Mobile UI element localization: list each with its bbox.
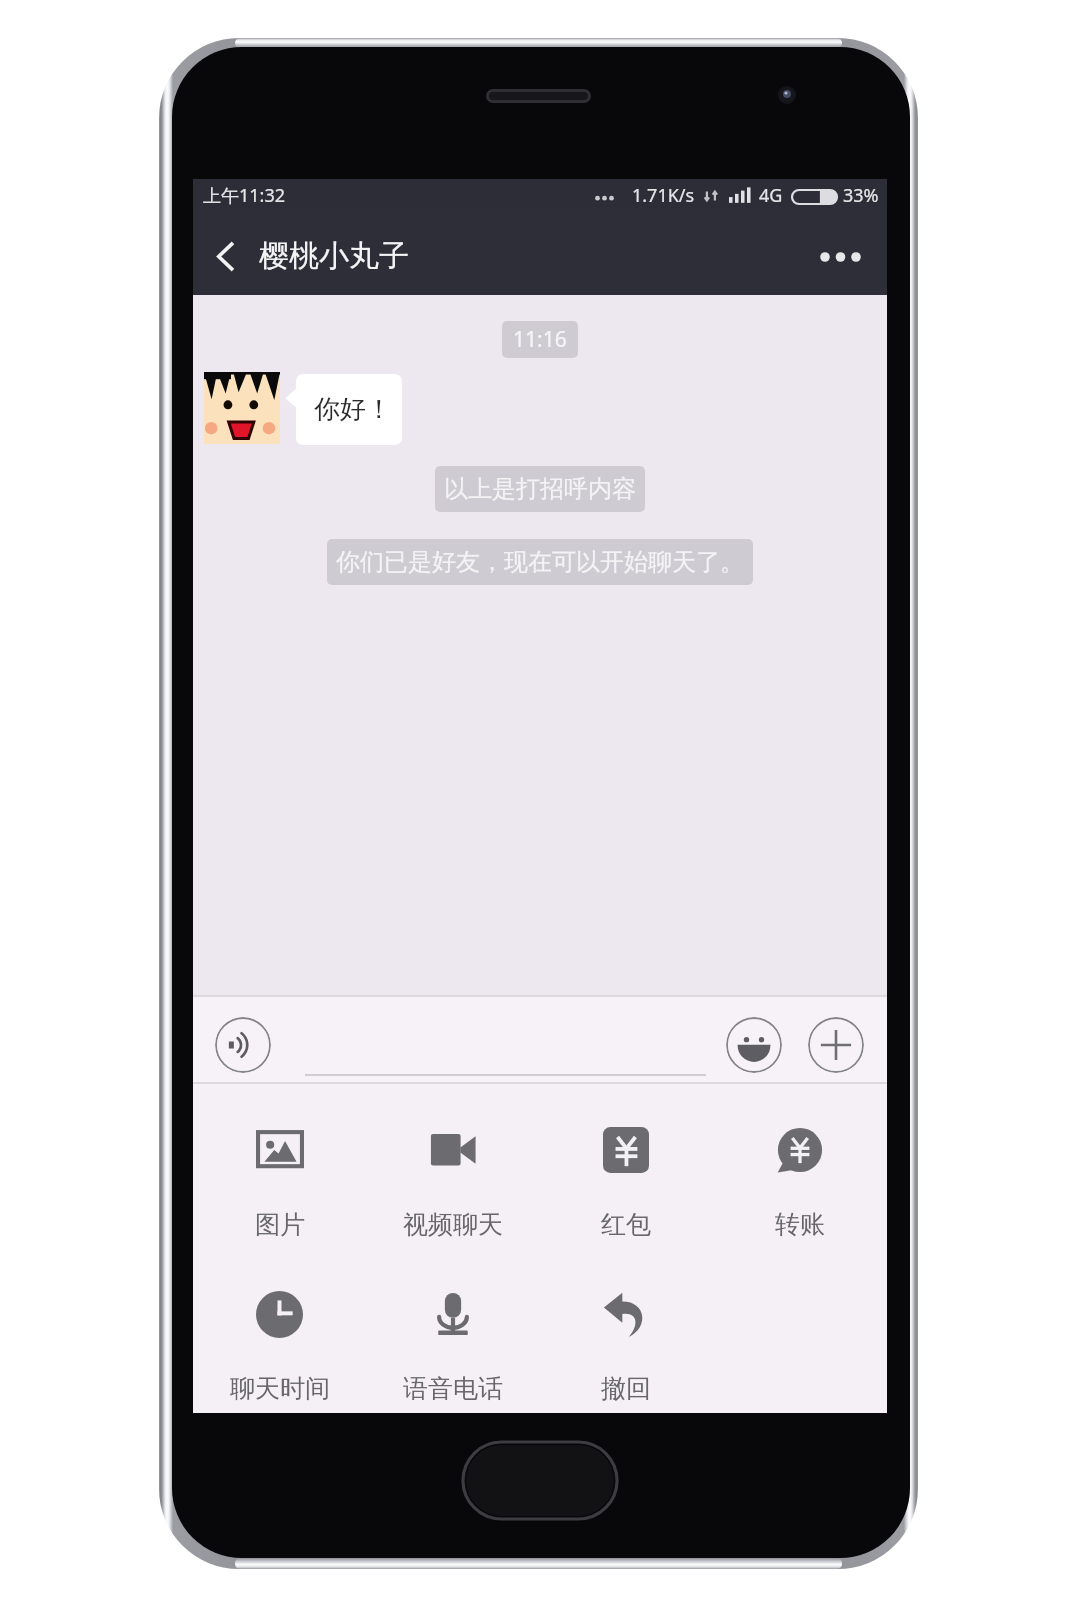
staticText: 红包 — [601, 1209, 651, 1240]
button[interactable]: 转账 — [713, 1084, 887, 1248]
staticText: 你们已是好友，现在可以开始聊天了。 — [336, 547, 744, 577]
button[interactable]: Voice message — [215, 1017, 271, 1073]
button[interactable]: 视频聊天 — [366, 1084, 539, 1248]
staticText: 1.71K/s — [632, 183, 695, 208]
staticText: 语音电话 — [403, 1373, 503, 1404]
button[interactable]: 撤回 — [539, 1248, 713, 1412]
staticText: 转账 — [775, 1209, 825, 1240]
button[interactable]: More — [808, 1017, 864, 1073]
button[interactable]: Emoji — [726, 1017, 782, 1073]
staticText: 上午11:32 — [203, 183, 286, 208]
button[interactable]: 图片 — [193, 1084, 366, 1248]
staticText: 撤回 — [601, 1373, 651, 1404]
staticText: 图片 — [255, 1209, 305, 1240]
staticText: 视频聊天 — [403, 1209, 503, 1240]
button[interactable]: Avatar — [204, 372, 280, 444]
button[interactable]: 红包 — [539, 1084, 713, 1248]
staticText: 以上是打招呼内容 — [444, 474, 636, 504]
staticText: 11:16 — [513, 325, 567, 354]
staticText: 樱桃小丸子 — [259, 237, 409, 275]
button[interactable]: 你好！ — [296, 374, 402, 445]
button[interactable]: Back — [193, 208, 249, 295]
staticText: 你好！ — [314, 393, 392, 426]
staticText: 33% — [843, 183, 879, 208]
staticText: 4G — [759, 183, 783, 208]
staticText: 聊天时间 — [230, 1373, 330, 1404]
button[interactable]: 聊天时间 — [193, 1248, 366, 1412]
button[interactable]: 语音电话 — [366, 1248, 539, 1412]
button[interactable]: More options — [801, 208, 887, 295]
